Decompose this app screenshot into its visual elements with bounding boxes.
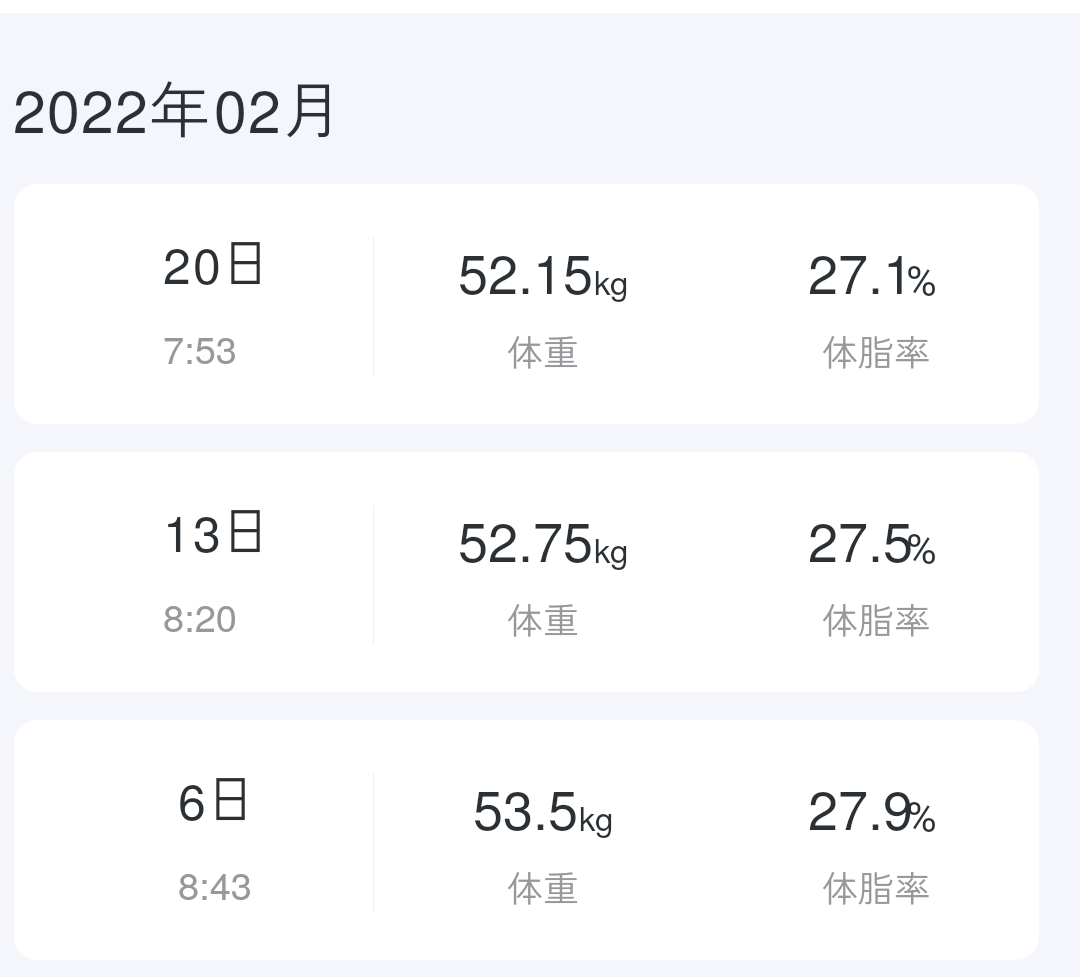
staticText: 8:20 [163,588,237,642]
staticText: kg [594,257,629,304]
staticText: 27.1 [808,232,914,309]
staticText: 日 [220,220,271,300]
staticText: 27.5 [808,500,914,577]
staticText: % [906,257,937,306]
staticText: 体重 [507,860,580,912]
staticText: % [906,793,937,842]
staticText: 体脂率 [822,860,931,912]
staticText: % [906,525,937,574]
staticText: 体脂率 [822,592,931,644]
staticText: kg [579,793,614,840]
staticText: 2022年02月 [13,62,344,150]
staticText: 日 [220,488,271,568]
staticText: 53.5 [473,768,579,845]
staticText: 52.15 [458,232,594,309]
staticText: 52.75 [458,500,594,577]
staticText: 6 [178,763,209,835]
staticText: 体脂率 [822,324,931,376]
staticText: 27.9 [808,768,914,845]
button[interactable]: 20 [14,184,1039,424]
staticText: 20 [163,227,224,299]
button[interactable]: 13 [14,452,1039,692]
staticText: kg [594,525,629,572]
button[interactable]: 6 [14,720,1039,960]
staticText: 体重 [507,592,580,644]
staticText: 日 [205,756,256,836]
staticText: 7:53 [163,320,237,374]
staticText: 体重 [507,324,580,376]
staticText: 8:43 [178,856,252,910]
staticText: 13 [163,495,224,567]
